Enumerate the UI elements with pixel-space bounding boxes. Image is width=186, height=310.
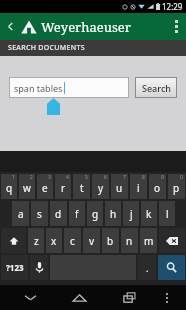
staticText: l xyxy=(166,207,169,221)
staticText: h xyxy=(110,207,117,221)
button[interactable]: 1 xyxy=(1,174,17,199)
button[interactable]: Back xyxy=(0,13,21,40)
staticText: j xyxy=(130,207,133,221)
staticText: k xyxy=(146,207,152,221)
button[interactable]: k xyxy=(141,201,157,226)
staticText: ?123 xyxy=(6,262,24,273)
staticText: span tables xyxy=(14,82,63,94)
staticText: SEARCH DOCUMENTS xyxy=(8,43,85,53)
button[interactable]: Shift xyxy=(1,228,26,253)
staticText: 0 xyxy=(180,174,183,181)
button[interactable]: 7 xyxy=(111,174,128,199)
button[interactable]: z xyxy=(28,228,44,253)
button[interactable]: v xyxy=(83,228,100,253)
staticText: 6 xyxy=(104,174,107,181)
staticText: Search xyxy=(142,82,171,94)
button[interactable]: ?123 xyxy=(1,255,28,280)
staticText: y xyxy=(98,181,104,195)
staticText: c xyxy=(70,234,75,248)
button[interactable]: More options xyxy=(166,13,186,40)
button[interactable]: 8 xyxy=(130,174,147,199)
button[interactable]: g xyxy=(87,201,103,226)
button[interactable]: h xyxy=(105,201,121,226)
button[interactable]: c xyxy=(64,228,81,253)
button[interactable]: 9 xyxy=(149,174,166,199)
staticText: p xyxy=(173,181,180,195)
staticText: 8 xyxy=(142,174,145,181)
staticText: i xyxy=(137,181,140,195)
button[interactable]: a xyxy=(12,201,29,226)
button[interactable]: Voice input xyxy=(30,255,48,280)
staticText: v xyxy=(89,234,95,248)
staticText: a xyxy=(18,207,24,221)
staticText: z xyxy=(34,234,39,248)
button[interactable]: n xyxy=(121,228,138,253)
button[interactable]: Backspace xyxy=(159,228,185,253)
button[interactable]: Menu xyxy=(158,285,176,310)
button[interactable]: . xyxy=(138,255,156,280)
button[interactable]: 6 xyxy=(92,174,109,199)
button[interactable]: l xyxy=(159,201,175,226)
staticText: b xyxy=(107,234,114,248)
button[interactable]: Search xyxy=(158,255,185,280)
staticText: u xyxy=(116,181,123,195)
button[interactable]: f xyxy=(69,201,85,226)
staticText: n xyxy=(126,234,133,248)
staticText: Weyerhaeuser xyxy=(41,18,131,36)
staticText: x xyxy=(51,234,57,248)
button[interactable]: 0 xyxy=(168,174,185,199)
button[interactable]: span tables xyxy=(9,77,129,98)
button[interactable]: 2 xyxy=(19,174,35,199)
staticText: d xyxy=(55,207,62,221)
staticText: 5 xyxy=(85,174,88,181)
staticText: w xyxy=(23,181,31,195)
button[interactable]: Recent apps xyxy=(109,285,149,310)
button[interactable]: 4 xyxy=(55,174,71,199)
button[interactable]: x xyxy=(46,228,62,253)
staticText: t xyxy=(80,181,84,195)
staticText: s xyxy=(37,207,42,221)
button[interactable]: Search xyxy=(135,77,177,98)
button[interactable]: m xyxy=(140,228,157,253)
staticText: . xyxy=(146,262,149,274)
button[interactable]: 3 xyxy=(37,174,53,199)
button[interactable]: s xyxy=(31,201,48,226)
button[interactable]: Home xyxy=(59,285,99,310)
button[interactable]: 5 xyxy=(73,174,90,199)
staticText: o xyxy=(154,181,161,195)
staticText: 1 xyxy=(12,174,15,181)
staticText: e xyxy=(42,181,48,195)
staticText: q xyxy=(6,181,13,195)
staticText: 7 xyxy=(123,174,126,181)
staticText: 12:29 xyxy=(162,1,183,12)
button[interactable]: b xyxy=(102,228,119,253)
staticText: g xyxy=(92,207,99,221)
button[interactable]: d xyxy=(50,201,67,226)
button[interactable]: j xyxy=(123,201,139,226)
staticText: r xyxy=(61,181,66,195)
staticText: 2 xyxy=(30,174,33,181)
button[interactable]: Hide keyboard xyxy=(10,285,50,310)
staticText: 4 xyxy=(66,174,69,181)
staticText: f xyxy=(75,207,79,221)
staticText: 3 xyxy=(48,174,51,181)
staticText: m xyxy=(144,234,154,248)
staticText: 9 xyxy=(161,174,164,181)
